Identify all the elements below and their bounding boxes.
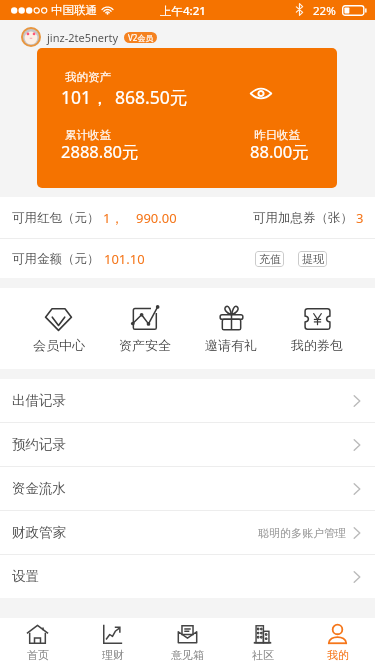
button[interactable]: 邀请有礼 <box>188 305 274 353</box>
staticText: 2888.80元 <box>61 140 139 163</box>
staticText: 昨日收益 <box>254 128 300 142</box>
staticText: 101.10 <box>104 250 145 268</box>
staticText: 预约记录 <box>12 436 66 453</box>
staticText: 邀请有礼 <box>205 337 257 353</box>
button[interactable]: 社区 <box>225 623 300 662</box>
staticText: jinz-2te5nerty <box>47 30 119 45</box>
staticText: 我的 <box>327 648 349 662</box>
staticText: 资金流水 <box>12 480 66 497</box>
button[interactable]: 首页 <box>0 623 75 662</box>
button[interactable]: 财政管家 <box>0 511 375 554</box>
staticText: 我的资产 <box>65 70 111 84</box>
button[interactable]: 提现 <box>298 251 327 267</box>
staticText: 上午4:21 <box>160 3 206 19</box>
staticText: 990.00 <box>136 209 177 227</box>
button[interactable]: Toggle balance visibility <box>248 80 274 106</box>
button[interactable]: 资产安全 <box>102 305 188 353</box>
button[interactable]: 我的 <box>300 623 375 662</box>
staticText: 充值 <box>259 252 281 266</box>
staticText: 设置 <box>12 568 39 585</box>
staticText: 中国联通 <box>51 3 97 17</box>
staticText: 出借记录 <box>12 392 66 409</box>
staticText: 意见箱 <box>171 648 204 662</box>
button[interactable]: 预约记录 <box>0 423 375 466</box>
button[interactable]: 意见箱 <box>150 623 225 662</box>
button[interactable]: 设置 <box>0 555 375 598</box>
staticText: 3 <box>356 209 364 227</box>
staticText: 868.50元 <box>115 85 188 109</box>
staticText: 1， <box>103 209 124 227</box>
button[interactable]: 充值 <box>255 251 284 267</box>
button[interactable]: 理财 <box>75 623 150 662</box>
staticText: 理财 <box>102 648 124 662</box>
staticText: 聪明的多账户管理 <box>258 526 346 540</box>
staticText: 可用金额（元） <box>12 251 100 267</box>
staticText: 会员中心 <box>33 337 85 353</box>
button[interactable]: 会员中心 <box>15 305 102 353</box>
staticText: 财政管家 <box>12 524 66 541</box>
staticText: 88.00元 <box>250 140 309 163</box>
staticText: 提现 <box>302 252 324 266</box>
staticText: V2会员 <box>128 32 154 43</box>
button[interactable]: Avatar <box>23 29 39 45</box>
staticText: 社区 <box>252 648 274 662</box>
staticText: 首页 <box>27 648 49 662</box>
button[interactable]: 资金流水 <box>0 467 375 510</box>
staticText: 可用加息券（张） <box>253 210 353 226</box>
staticText: 22% <box>313 3 336 19</box>
button[interactable]: 我的券包 <box>274 305 360 353</box>
staticText: 累计收益 <box>65 128 111 142</box>
staticText: 101， <box>61 85 109 109</box>
staticText: 我的券包 <box>291 337 343 353</box>
staticText: 可用红包（元） <box>12 210 100 226</box>
button[interactable]: 出借记录 <box>0 379 375 422</box>
staticText: 资产安全 <box>119 337 171 353</box>
